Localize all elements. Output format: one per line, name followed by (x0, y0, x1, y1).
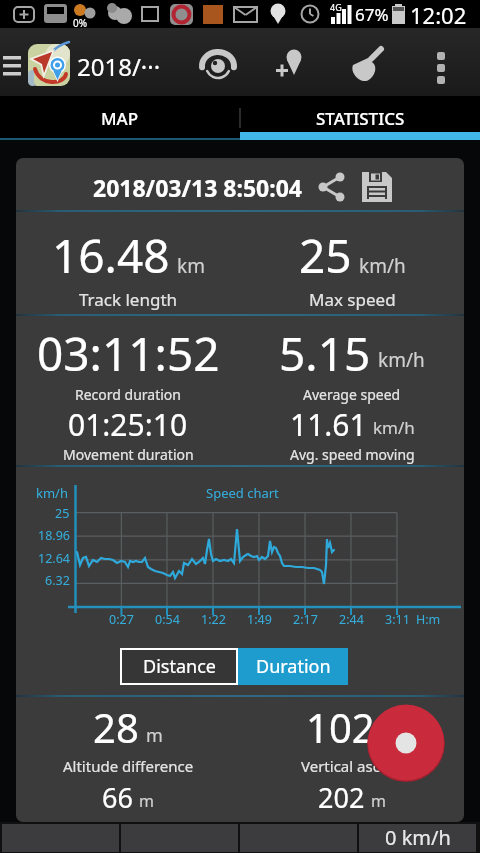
button[interactable] (193, 38, 245, 90)
staticText: 12:02 (410, 0, 467, 28)
staticText: m (382, 723, 399, 748)
button[interactable] (0, 48, 24, 92)
button[interactable] (268, 38, 320, 90)
staticText: Speed chart (206, 484, 279, 502)
staticText: 01:25:10 (68, 404, 188, 442)
staticText: 67% (355, 3, 389, 26)
staticText: 2:44 (339, 611, 364, 628)
staticText: 0% (73, 16, 88, 30)
staticText: 2018/··· (77, 50, 161, 83)
staticText: m (146, 723, 163, 748)
staticText: 25 (299, 224, 352, 286)
staticText: Average speed (303, 385, 401, 404)
staticText: MAP (101, 107, 139, 130)
staticText: 202 (318, 779, 365, 815)
staticText: 12.64 (38, 550, 70, 567)
button[interactable]: STATISTICS (240, 96, 480, 140)
staticText: 1:49 (247, 611, 272, 628)
staticText: 102 (306, 700, 375, 754)
staticText: Max speed (309, 288, 396, 310)
button[interactable] (341, 38, 393, 90)
staticText: 18.96 (38, 527, 70, 544)
staticText: 0:27 (109, 611, 134, 628)
staticText: 16.48 (52, 224, 170, 286)
staticText: 5.15 (279, 322, 371, 380)
staticText: km/h (373, 416, 415, 439)
staticText: Altitude difference (63, 756, 194, 776)
staticText: H:m (416, 611, 441, 628)
button[interactable] (367, 704, 445, 782)
staticText: 25 (55, 505, 70, 522)
staticText: 6.32 (45, 572, 70, 589)
staticText: 11.61 (290, 404, 367, 442)
staticText: Movement duration (63, 445, 194, 464)
button[interactable] (415, 38, 467, 90)
button[interactable] (362, 172, 393, 202)
staticText: km/h (36, 484, 68, 502)
button[interactable] (316, 172, 348, 202)
staticText: 1:22 (201, 611, 226, 628)
staticText: Record duration (75, 385, 181, 404)
staticText: 4G (330, 1, 342, 13)
staticText: Distance (143, 654, 216, 679)
staticText: 28 (93, 700, 139, 754)
staticText: 2:17 (293, 611, 318, 628)
button[interactable]: Duration (238, 648, 348, 685)
staticText: Vertical ascent (301, 756, 403, 776)
staticText: 0 km/h (385, 824, 451, 849)
staticText: Track length (79, 288, 178, 310)
staticText: 0:54 (155, 611, 180, 628)
button[interactable]: MAP (0, 96, 240, 140)
staticText: 03:11:52 (37, 322, 220, 380)
button[interactable]: Distance (120, 648, 238, 685)
staticText: km/h (378, 347, 425, 373)
staticText: 3:11 (385, 611, 410, 628)
staticText: STATISTICS (316, 107, 405, 130)
staticText: m (371, 790, 386, 812)
staticText: 2018/03/13 8:50:04 (93, 172, 303, 203)
button[interactable]: 0 km/h (359, 824, 476, 852)
staticText: Avg. speed moving (290, 445, 415, 464)
staticText: 66 (102, 779, 133, 815)
staticText: Duration (256, 654, 331, 679)
staticText: km/h (359, 253, 406, 279)
staticText: km (177, 253, 205, 279)
staticText: m (139, 790, 154, 812)
